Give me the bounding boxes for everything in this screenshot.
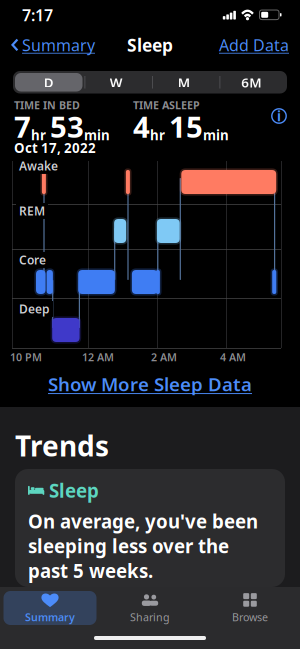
staticText: M xyxy=(178,73,190,91)
staticText: Trends xyxy=(15,427,109,464)
button[interactable]: Summary xyxy=(3,591,96,625)
staticText: 6M xyxy=(241,73,261,91)
button[interactable]: Sharing xyxy=(103,591,196,625)
staticText: Sharing xyxy=(130,610,170,624)
staticText: TIME ASLEEP xyxy=(133,98,200,112)
staticText: Awake xyxy=(19,158,58,174)
button[interactable]: M xyxy=(150,73,217,91)
button[interactable]: Add Data xyxy=(219,34,289,56)
staticText: On average, you've been sleeping less ov… xyxy=(28,509,258,583)
button[interactable]: Browse xyxy=(203,591,296,625)
staticText: min xyxy=(84,126,110,144)
button[interactable]: About sleep stages xyxy=(271,108,287,124)
staticText: TIME IN BED xyxy=(14,98,80,112)
staticText: 2 AM xyxy=(151,350,177,364)
staticText: 10 PM xyxy=(10,350,42,364)
staticText: hr xyxy=(150,126,165,144)
staticText: 7 xyxy=(14,107,31,146)
button[interactable]: W xyxy=(82,73,150,91)
staticText: 15 xyxy=(169,107,203,146)
staticText: Sleep xyxy=(49,478,99,503)
staticText: i xyxy=(277,107,281,125)
staticText: 4 AM xyxy=(220,350,246,364)
staticText: 7:17 xyxy=(22,4,53,26)
staticText: Summary xyxy=(25,610,75,624)
staticText: Browse xyxy=(232,610,268,624)
staticText: min xyxy=(203,126,229,144)
staticText: 4 xyxy=(133,107,150,146)
staticText: Sleep xyxy=(127,33,173,56)
staticText: Core xyxy=(19,252,46,268)
staticText: Show More Sleep Data xyxy=(48,372,252,396)
button[interactable]: Summary xyxy=(11,34,95,56)
button[interactable]: 6M xyxy=(217,73,285,91)
staticText: Oct 17, 2022 xyxy=(14,139,96,157)
staticText: Deep xyxy=(19,301,50,317)
staticText: Summary xyxy=(22,34,95,56)
staticText: 53 xyxy=(50,107,84,146)
button[interactable]: Show More Sleep Data xyxy=(0,368,300,400)
staticText: W xyxy=(110,73,123,91)
staticText: 12 AM xyxy=(82,350,114,364)
staticText: hr xyxy=(31,126,46,144)
button[interactable]: D xyxy=(15,73,82,91)
staticText: REM xyxy=(19,203,45,219)
staticText: D xyxy=(44,73,54,91)
staticText: Add Data xyxy=(219,34,289,56)
